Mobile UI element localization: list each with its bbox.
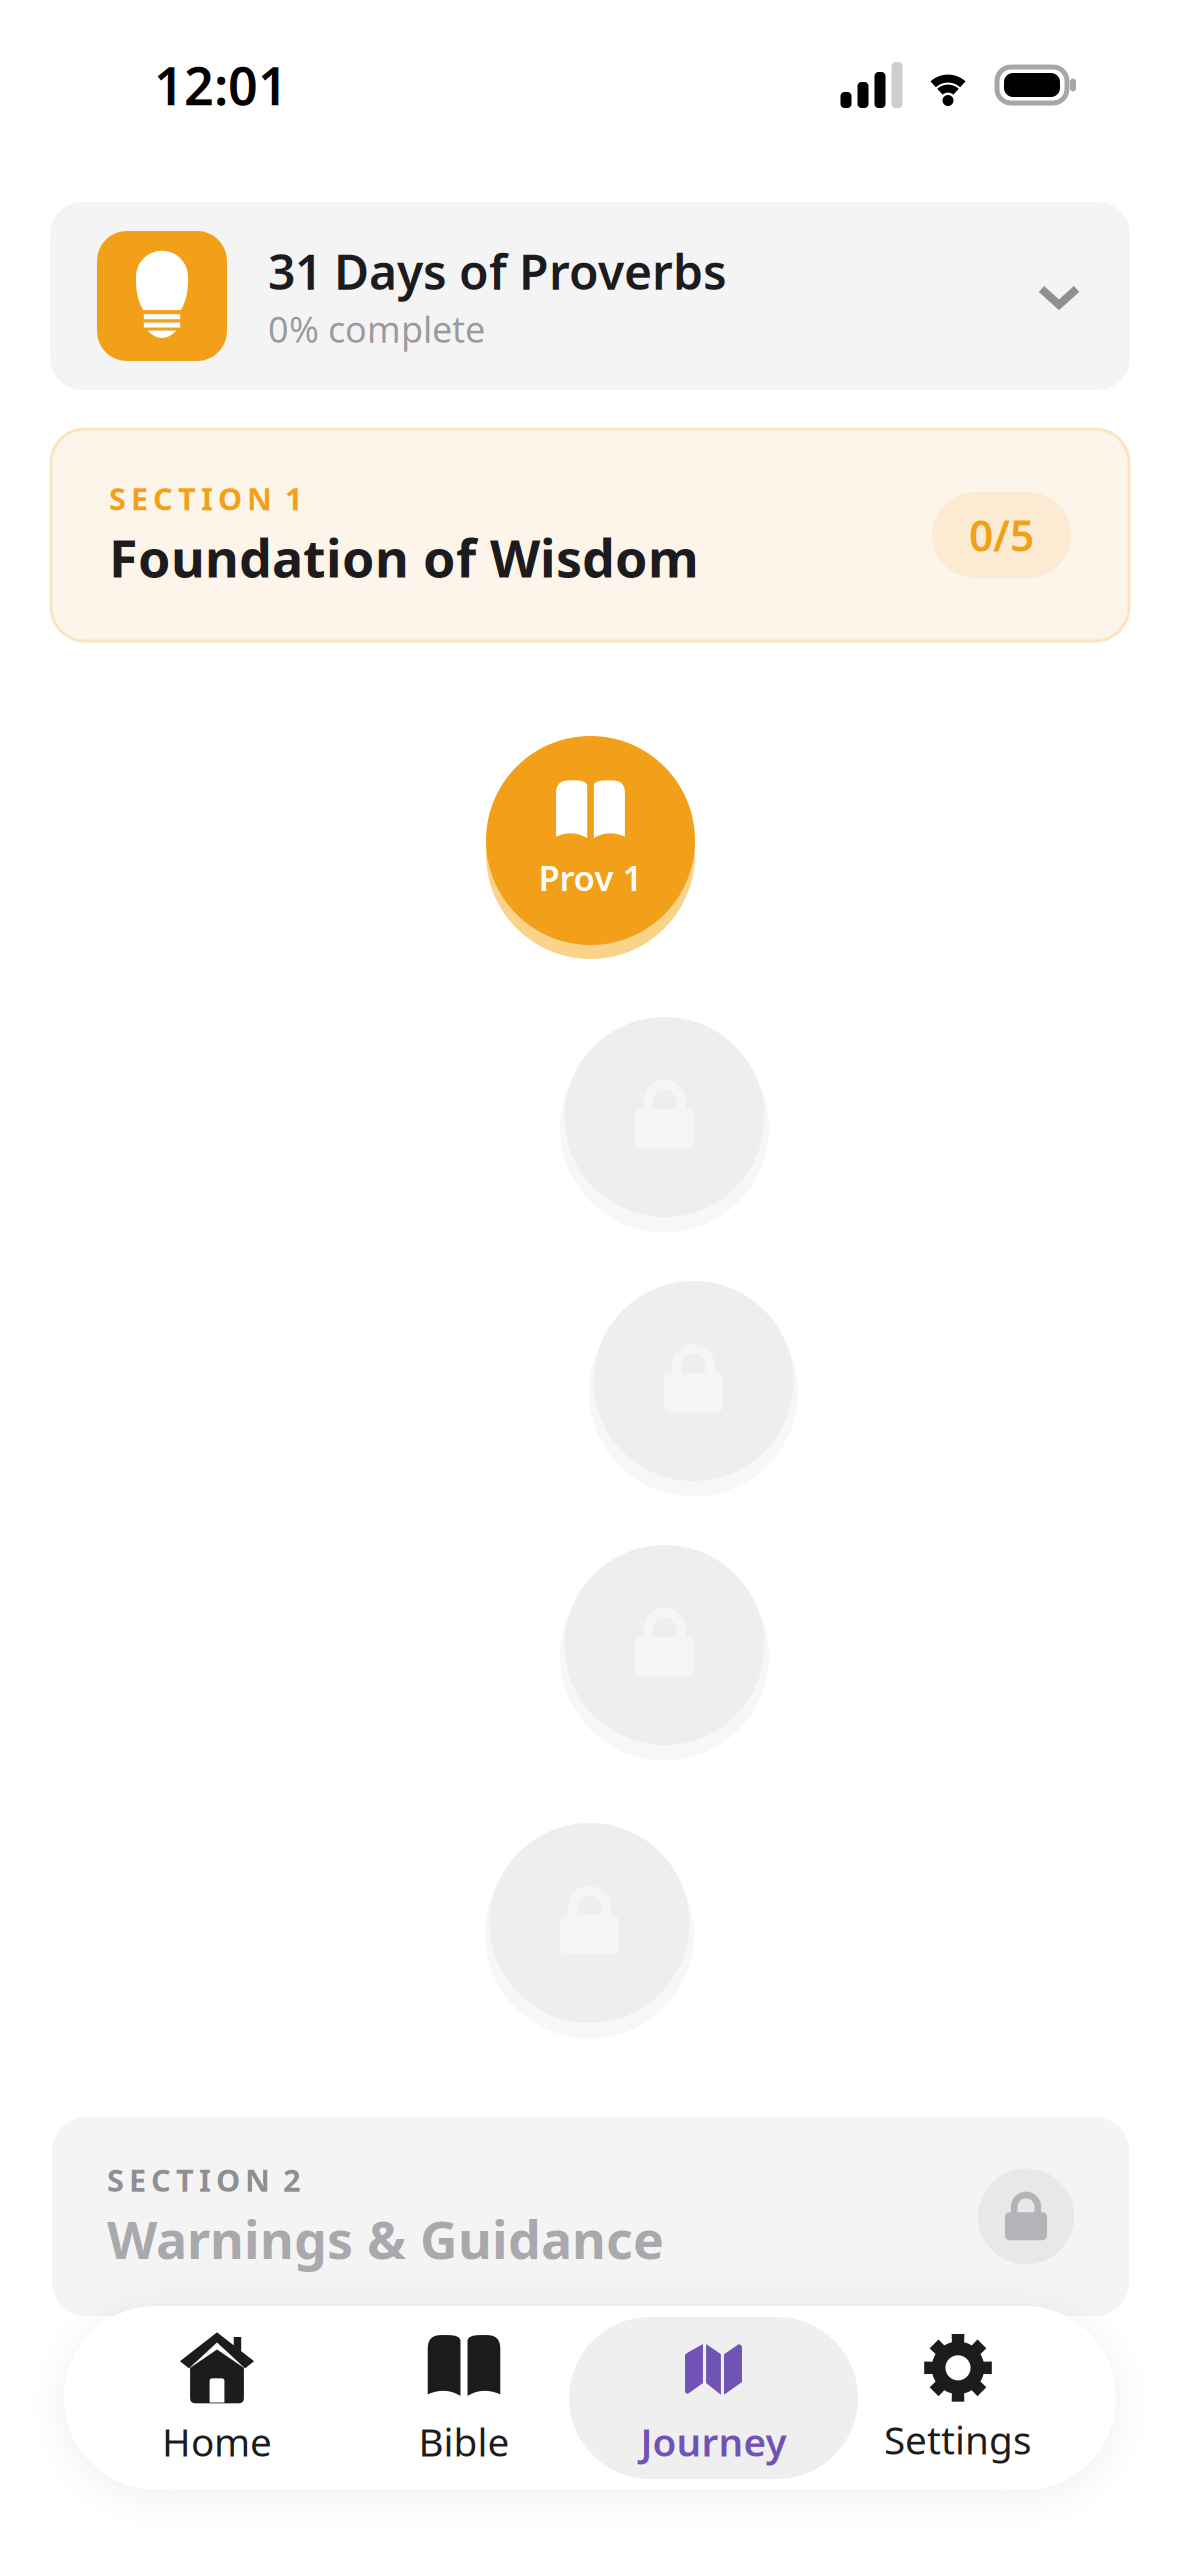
staticText: Prov 1: [538, 854, 642, 900]
staticText: Home: [162, 2416, 272, 2467]
button[interactable]: Bible: [364, 2317, 564, 2479]
staticText: 12:01: [154, 50, 288, 120]
button[interactable]: Home: [117, 2317, 317, 2479]
button[interactable]: S E C T I O N 1: [51, 429, 1129, 641]
staticText: Journey: [640, 2416, 786, 2467]
button[interactable]: Settings: [858, 2317, 1058, 2479]
staticText: S E C T I O N 1: [109, 478, 303, 519]
staticText: 0/5: [969, 507, 1034, 563]
staticText: Warnings & Guidance: [107, 2204, 664, 2273]
button[interactable]: Locked lesson: [589, 1271, 798, 1491]
button[interactable]: Journey: [569, 2317, 858, 2479]
staticText: 0% complete: [268, 305, 485, 353]
button[interactable]: Prov 1: [486, 729, 695, 952]
staticText: 31 Days of Proverbs: [268, 239, 727, 303]
button[interactable]: Locked lesson: [560, 1535, 769, 1755]
staticText: Settings: [884, 2414, 1032, 2465]
button[interactable]: 31 Days of Proverbs: [50, 202, 1130, 390]
button[interactable]: Locked lesson: [485, 1813, 694, 2033]
button[interactable]: Locked lesson: [560, 1007, 769, 1227]
staticText: S E C T I O N 2: [107, 2160, 301, 2200]
staticText: Foundation of Wisdom: [109, 523, 699, 592]
staticText: Bible: [418, 2416, 509, 2467]
